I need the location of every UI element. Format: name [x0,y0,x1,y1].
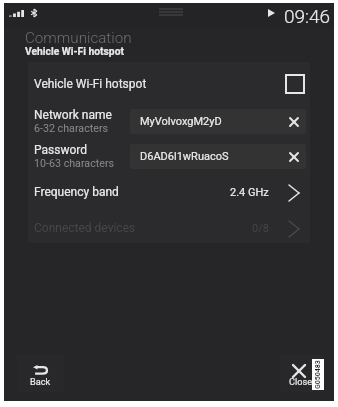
staticText: Back [30,376,51,387]
staticText: MyVolvoxgM2yD [140,115,222,128]
button[interactable]: Network name [28,107,310,135]
staticText: Network name [34,108,112,122]
other: Close [293,365,305,377]
staticText: 09:46 [284,5,331,27]
button[interactable]: Vehicle Wi-Fi hotspot [28,70,310,98]
staticText: 0/8 [252,222,269,235]
button[interactable]: Password [28,142,310,170]
staticText: Vehicle Wi-Fi hotspot [25,45,124,57]
staticText: G050483 [314,360,322,389]
staticText: D6AD6l1wRuacoS [140,150,229,163]
other: Clear Password [290,153,298,161]
staticText: Vehicle Wi-Fi hotspot [34,77,147,91]
button[interactable]: Back [17,354,64,393]
staticText: 2.4 GHz [230,186,269,199]
staticText: 10-63 characters [34,157,115,170]
staticText: Communication [25,29,132,47]
other: Media playing [268,9,275,17]
button[interactable]: Connected devices [28,217,310,239]
button[interactable]: Frequency band [28,181,310,203]
staticText: Password [34,143,88,157]
staticText: Close [289,376,313,387]
other: Clear Network name [290,118,298,126]
staticText: 6-32 characters [34,122,109,135]
staticText: Connected devices [34,221,136,235]
other: Vehicle Wi-Fi hotspot checkbox [286,75,304,93]
staticText: Frequency band [34,185,119,199]
button[interactable]: Close [280,354,322,393]
